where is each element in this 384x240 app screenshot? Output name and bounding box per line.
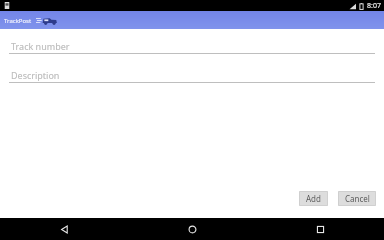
button[interactable]: Description — [0, 67, 384, 82]
button[interactable]: Cancel — [338, 191, 376, 206]
staticText: Track number — [11, 40, 70, 52]
staticText: Add — [306, 193, 321, 204]
staticText: Description — [11, 69, 60, 81]
staticText: Cancel — [345, 193, 370, 204]
button[interactable]: Back — [0, 218, 128, 240]
staticText: 8:07 — [367, 1, 381, 11]
button[interactable]: Recent apps — [256, 218, 384, 240]
button[interactable]: Track number — [0, 38, 384, 53]
other: TrackPost logo — [36, 15, 58, 26]
button[interactable]: Home — [128, 218, 256, 240]
staticText: TrackPost — [4, 17, 32, 25]
button[interactable]: Add — [299, 191, 328, 206]
